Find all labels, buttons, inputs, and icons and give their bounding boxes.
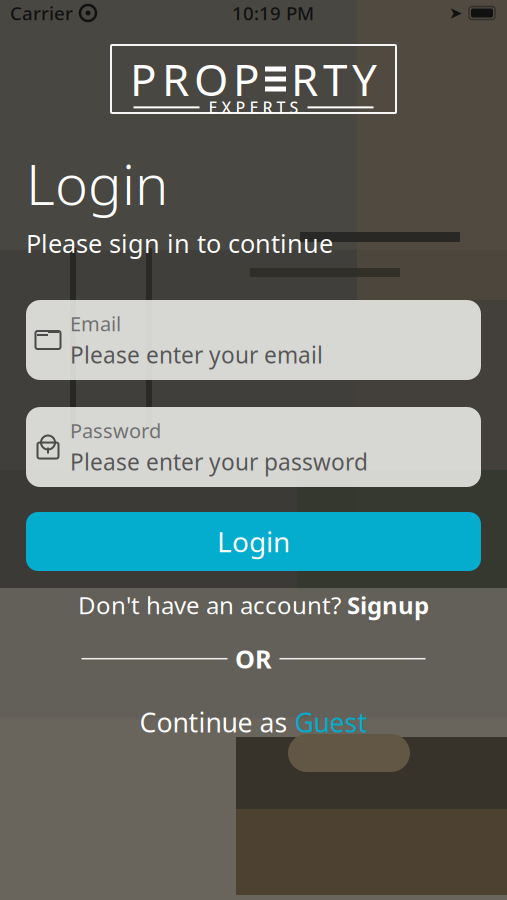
- staticText: E X P E R T S: [208, 97, 298, 118]
- staticText: Carrier: [10, 1, 73, 25]
- staticText: R: [291, 50, 318, 108]
- staticText: Don't have an account?: [78, 589, 341, 621]
- button[interactable]: Email: [26, 300, 481, 380]
- staticText: P: [233, 50, 260, 108]
- staticText: Login: [26, 146, 168, 220]
- staticText: Y: [352, 50, 377, 108]
- staticText: R: [162, 50, 189, 108]
- staticText: OR: [235, 642, 272, 675]
- staticText: Password: [70, 417, 161, 444]
- staticText: 10:19 PM: [232, 1, 314, 25]
- staticText: Login: [217, 523, 290, 560]
- button[interactable]: Login: [26, 512, 481, 571]
- button[interactable]: Password: [26, 407, 481, 487]
- staticText: Guest: [294, 704, 367, 740]
- button[interactable]: Continue as: [127, 699, 379, 745]
- staticText: Please enter your password: [70, 447, 368, 477]
- staticText: Please enter your email: [70, 340, 323, 370]
- staticText: Please sign in to continue: [26, 226, 333, 260]
- staticText: Continue as: [139, 704, 287, 740]
- staticText: P: [130, 50, 157, 108]
- button[interactable]: Don't have an account?: [68, 585, 439, 625]
- staticText: O: [194, 50, 228, 108]
- staticText: ➤: [449, 4, 462, 22]
- staticText: Email: [70, 310, 121, 337]
- staticText: T: [323, 50, 347, 108]
- staticText: Signup: [347, 589, 429, 621]
